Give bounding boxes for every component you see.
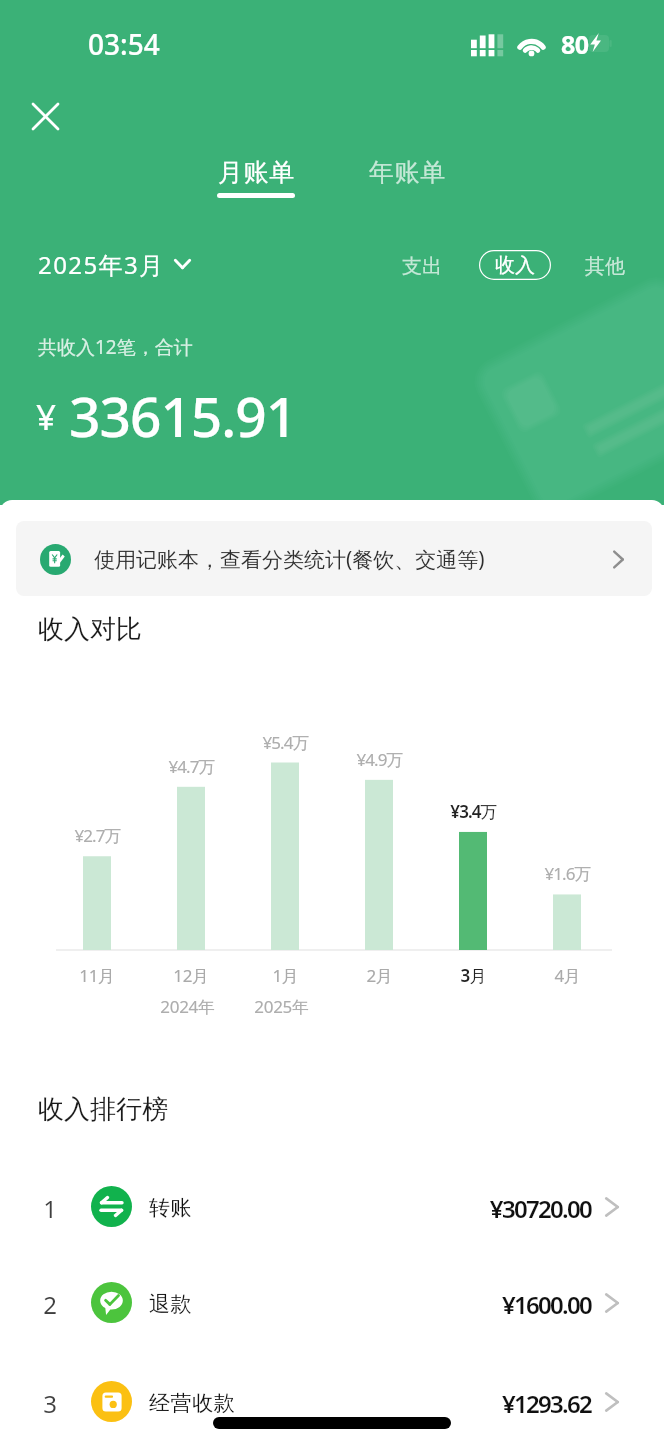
button[interactable]: 其他 bbox=[577, 246, 633, 286]
staticText: 1月 bbox=[272, 964, 299, 987]
staticText: ¥2.7万 bbox=[74, 824, 121, 847]
staticText: 2025年3月 bbox=[38, 248, 165, 281]
staticText: ¥ bbox=[36, 393, 57, 441]
staticText: ¥4.9万 bbox=[356, 748, 403, 771]
button[interactable]: 2 bbox=[0, 1253, 664, 1353]
staticText: ¥30720.00 bbox=[489, 1192, 591, 1225]
staticText: 1 bbox=[43, 1192, 57, 1225]
staticText: ¥5.4万 bbox=[262, 731, 309, 754]
button[interactable]: 支出 bbox=[394, 246, 450, 286]
staticText: 03:54 bbox=[88, 25, 160, 63]
button[interactable]: 3 bbox=[0, 1352, 664, 1439]
button[interactable]: 使用记账本，查看分类统计(餐饮、交通等) bbox=[16, 521, 652, 596]
staticText: 4月 bbox=[554, 964, 581, 987]
staticText: 2 bbox=[43, 1288, 57, 1321]
button[interactable]: 收入 bbox=[479, 250, 551, 280]
staticText: 2024年 bbox=[160, 995, 215, 1018]
staticText: 2025年 bbox=[254, 995, 309, 1018]
button[interactable]: 月账单 bbox=[198, 157, 314, 219]
staticText: 2月 bbox=[366, 964, 393, 987]
button[interactable]: 年账单 bbox=[349, 157, 465, 219]
staticText: ¥4.7万 bbox=[168, 755, 215, 778]
staticText: ¥1.6万 bbox=[544, 862, 591, 885]
staticText: ¥1600.00 bbox=[501, 1288, 591, 1321]
staticText: 80 bbox=[561, 27, 589, 61]
staticText: ¥1293.62 bbox=[501, 1387, 591, 1420]
staticText: 收入 bbox=[495, 253, 535, 278]
staticText: 月账单 bbox=[218, 157, 295, 188]
staticText: 其他 bbox=[585, 254, 625, 279]
staticText: 收入对比 bbox=[38, 613, 142, 646]
staticText: 收入排行榜 bbox=[38, 1093, 168, 1126]
staticText: 3 bbox=[43, 1387, 57, 1420]
staticText: ¥3.4万 bbox=[450, 800, 497, 823]
staticText: 共收入12笔，合计 bbox=[38, 334, 193, 360]
staticText: 转账 bbox=[149, 1195, 193, 1221]
staticText: 经营收款 bbox=[149, 1390, 236, 1416]
button[interactable]: 1 bbox=[0, 1157, 664, 1257]
staticText: 11月 bbox=[79, 964, 115, 987]
staticText: 33615.91 bbox=[69, 378, 297, 453]
staticText: 使用记账本，查看分类统计(餐饮、交通等) bbox=[94, 545, 485, 574]
button[interactable]: Close bbox=[20, 91, 70, 141]
staticText: 支出 bbox=[402, 254, 442, 279]
staticText: 年账单 bbox=[369, 157, 446, 188]
staticText: 12月 bbox=[173, 964, 209, 987]
staticText: 3月 bbox=[460, 964, 487, 987]
button[interactable]: 2025年3月 bbox=[38, 246, 191, 282]
staticText: 退款 bbox=[149, 1291, 193, 1317]
